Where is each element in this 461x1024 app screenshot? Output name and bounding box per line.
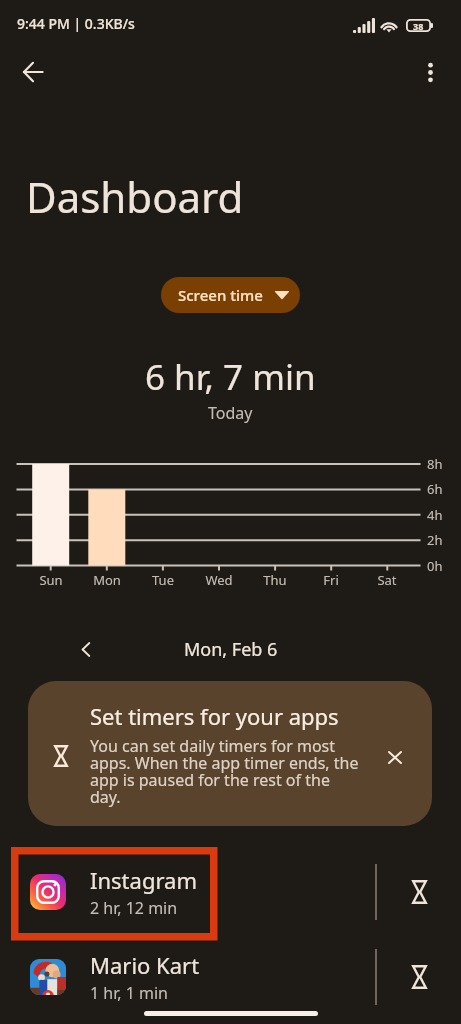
button[interactable]: More options bbox=[407, 49, 453, 95]
staticText: Sun bbox=[39, 571, 63, 589]
button[interactable]: Screen time bbox=[161, 277, 300, 313]
staticText: Screen time bbox=[178, 285, 263, 305]
staticText: 9:44 PM | 0.3KB/s bbox=[17, 14, 135, 33]
staticText: Instagram bbox=[90, 865, 197, 895]
button[interactable]: Set timer for Mario Kart bbox=[377, 934, 461, 1019]
staticText: Mon bbox=[93, 571, 121, 589]
staticText: Fri bbox=[323, 571, 339, 589]
staticText: Mario Kart bbox=[90, 950, 200, 980]
staticText: 38 bbox=[413, 20, 424, 32]
staticText: 2h bbox=[427, 531, 443, 549]
staticText: Sat bbox=[377, 571, 397, 589]
button[interactable]: Instagram bbox=[0, 849, 461, 934]
staticText: Wed bbox=[205, 571, 233, 589]
button[interactable]: Mario Kart bbox=[0, 934, 461, 1019]
staticText: Thu bbox=[263, 571, 287, 589]
button[interactable]: Set timers for your apps bbox=[28, 681, 432, 826]
staticText: 4h bbox=[427, 506, 443, 524]
staticText: Tue bbox=[152, 571, 174, 589]
button[interactable]: Dismiss bbox=[362, 681, 432, 826]
staticText: 6 hr, 7 min bbox=[145, 353, 316, 401]
button[interactable]: Set timer for Instagram bbox=[377, 849, 461, 934]
staticText: Set timers for your apps bbox=[90, 701, 339, 731]
staticText: 2 hr, 12 min bbox=[90, 897, 178, 919]
staticText: 6h bbox=[427, 480, 443, 498]
button[interactable]: Previous day bbox=[69, 637, 103, 661]
staticText: Mon, Feb 6 bbox=[184, 637, 278, 661]
staticText: You can set daily timers for most apps. … bbox=[90, 735, 362, 808]
staticText: 0h bbox=[427, 557, 443, 575]
staticText: Dashboard bbox=[26, 168, 244, 225]
staticText: 8h bbox=[427, 455, 443, 473]
staticText: Today bbox=[208, 402, 253, 424]
staticText: 1 hr, 1 min bbox=[90, 982, 168, 1004]
button[interactable]: Back bbox=[10, 49, 56, 95]
